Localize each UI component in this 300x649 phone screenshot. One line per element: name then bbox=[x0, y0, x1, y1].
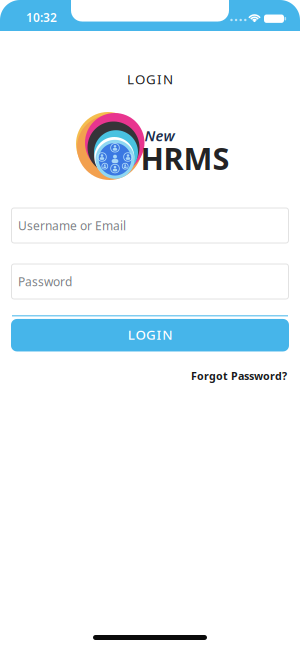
staticText: LOGIN bbox=[128, 326, 172, 343]
staticText: 10:32 bbox=[26, 9, 57, 25]
button[interactable]: Username or Email bbox=[11, 208, 288, 243]
staticText: Password bbox=[18, 273, 72, 289]
staticText: LOGIN bbox=[127, 70, 173, 88]
staticText: Forgot Password? bbox=[191, 369, 287, 383]
staticText: New bbox=[144, 126, 174, 145]
staticText: HRMS bbox=[140, 138, 229, 178]
staticText: Username or Email bbox=[18, 217, 126, 233]
button[interactable]: Forgot Password? bbox=[191, 369, 287, 383]
button[interactable]: LOGIN bbox=[11, 319, 289, 351]
button[interactable]: Password bbox=[11, 264, 288, 299]
